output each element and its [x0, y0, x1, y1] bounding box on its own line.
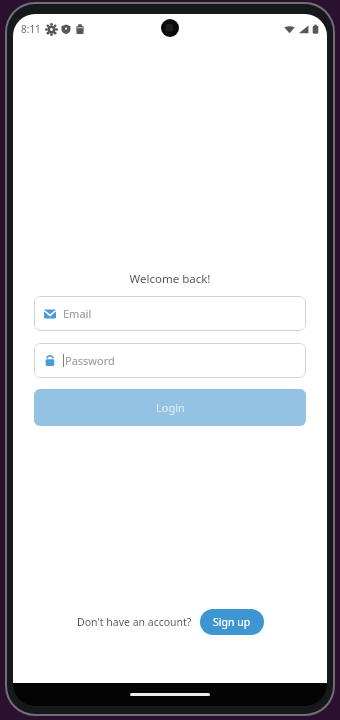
button[interactable]: Login — [34, 389, 306, 426]
staticText: Sign up — [213, 615, 251, 629]
button[interactable]: Email — [34, 296, 306, 331]
staticText: Password — [65, 353, 115, 368]
staticText: 8:11 — [21, 22, 41, 36]
staticText: Email — [63, 306, 92, 321]
staticText: Don't have an account? — [77, 615, 192, 629]
staticText: Welcome back! — [34, 271, 306, 287]
staticText: Login — [156, 400, 185, 415]
button[interactable]: Password — [34, 343, 306, 378]
button[interactable]: Sign up — [200, 609, 264, 635]
